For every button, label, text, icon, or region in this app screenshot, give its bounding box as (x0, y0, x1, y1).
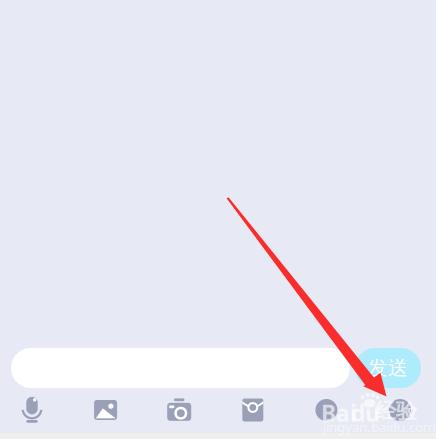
button[interactable]: Photos (91, 395, 121, 425)
button[interactable]: Camera (164, 395, 194, 425)
button[interactable]: More (385, 395, 415, 425)
button[interactable]: Red packet (238, 395, 268, 425)
staticText: du (351, 398, 380, 428)
staticText: 经验 (375, 398, 417, 424)
staticText: Bai (321, 398, 357, 428)
button[interactable]: 发送 (355, 348, 421, 388)
staticText: 发送 (368, 356, 408, 380)
button[interactable]: Voice message (17, 395, 47, 425)
staticText: jingyan.baidu.com (323, 418, 435, 436)
button[interactable] (11, 348, 350, 388)
button[interactable]: Emoji (311, 395, 341, 425)
